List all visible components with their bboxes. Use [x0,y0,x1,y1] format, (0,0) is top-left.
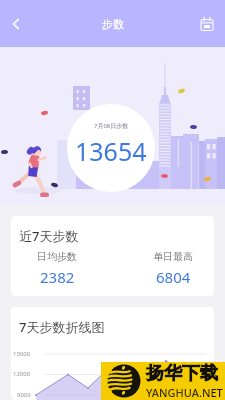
button[interactable]: 近7天步数 [11,216,214,296]
staticText: YANGHUA.NET [146,385,223,400]
staticText: 7月08日步数 [94,122,129,130]
staticText: 步数 [102,17,124,31]
staticText: 15000 [13,350,31,358]
button[interactable]: Back [3,11,29,37]
staticText: 7天步数折线图 [19,318,105,336]
staticText: 12000 [13,370,31,378]
staticText: 9000 [17,391,31,399]
staticText: 2382 [40,267,75,287]
staticText: 扬华下载 [146,362,218,385]
staticText: 近7天步数 [19,227,79,245]
staticText: 13654 [75,134,147,168]
staticText: 日均步数 [37,250,77,263]
button[interactable]: Calendar [196,13,218,35]
staticText: 6804 [156,267,191,287]
staticText: 单日最高 [153,250,193,263]
